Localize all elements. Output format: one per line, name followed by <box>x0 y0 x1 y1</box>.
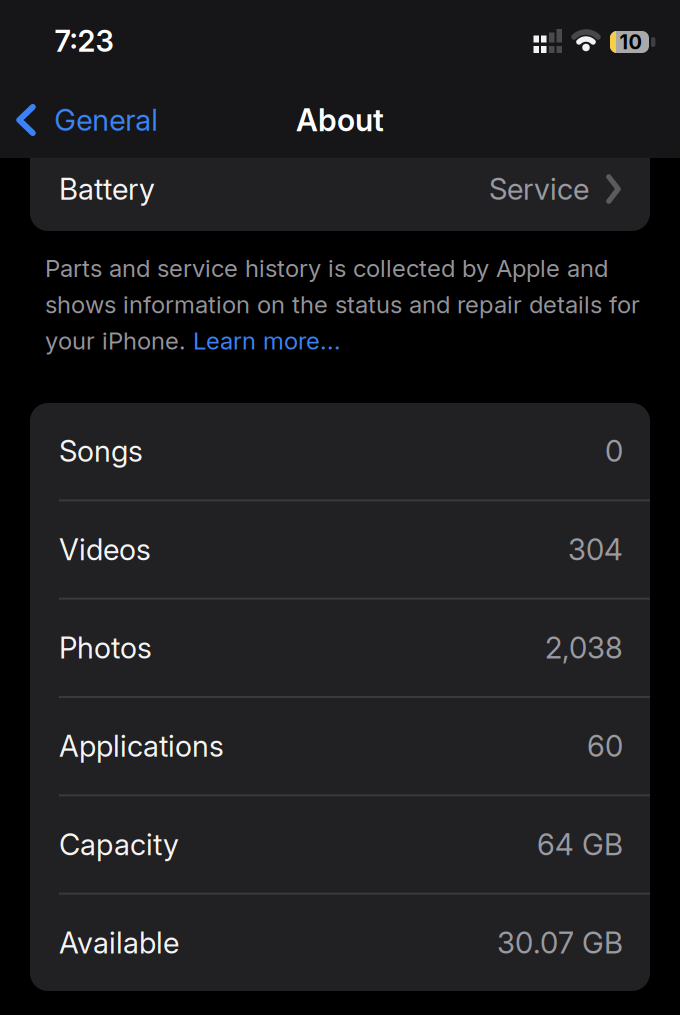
staticText: 30.07 GB <box>497 925 623 960</box>
button[interactable]: Battery <box>30 158 650 231</box>
staticText: Learn more... <box>193 327 341 355</box>
staticText: Songs <box>59 434 143 468</box>
staticText: 304 <box>568 532 623 567</box>
staticText: 60 <box>587 729 623 763</box>
staticText: 0 <box>605 434 623 468</box>
staticText: Applications <box>59 729 224 763</box>
staticText: Videos <box>59 532 151 567</box>
staticText: Photos <box>59 630 152 665</box>
staticText: General <box>54 103 158 137</box>
staticText: 2,038 <box>545 630 623 665</box>
staticText: 64 GB <box>537 827 623 862</box>
staticText: About <box>296 102 384 138</box>
staticText: 10 <box>619 30 641 54</box>
staticText: Battery <box>59 172 155 206</box>
staticText: 7:23 <box>54 24 113 58</box>
staticText: shows information on the status and repa… <box>45 290 640 319</box>
staticText: Capacity <box>59 827 179 862</box>
staticText: your iPhone. <box>45 327 193 355</box>
staticText: Available <box>59 925 179 960</box>
button[interactable]: General <box>16 103 158 137</box>
button[interactable]: Learn more... <box>193 327 341 355</box>
staticText: Parts and service history is collected b… <box>45 254 608 282</box>
staticText: Service <box>489 172 589 206</box>
